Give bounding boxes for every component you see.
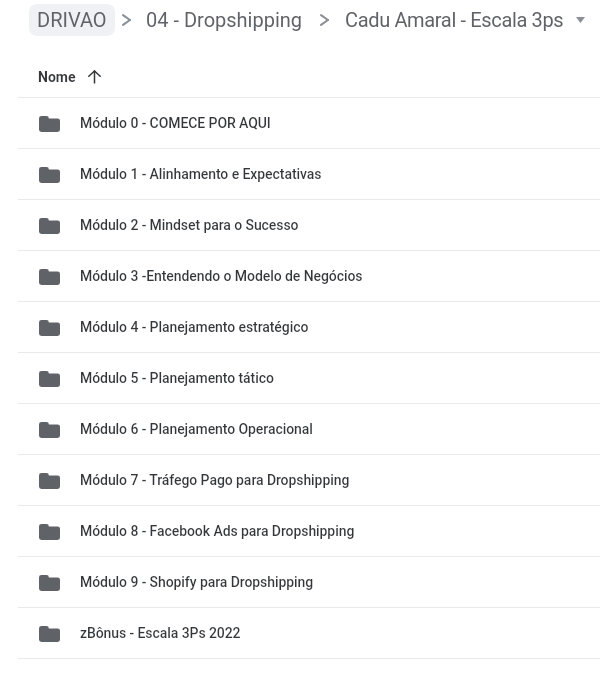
- button[interactable]: Módulo 1 - Alinhamento e Expectativas: [0, 149, 600, 199]
- staticText: Módulo 1 - Alinhamento e Expectativas: [80, 166, 322, 182]
- staticText: Módulo 3 -Entendendo o Modelo de Negócio…: [80, 268, 363, 284]
- button[interactable]: Módulo 5 - Planejamento tático: [0, 353, 600, 403]
- staticText: Módulo 0 - COMECE POR AQUI: [80, 115, 271, 131]
- button[interactable]: zBônus - Escala 3Ps 2022: [0, 608, 600, 658]
- button[interactable]: Módulo 6 - Planejamento Operacional: [0, 404, 600, 454]
- staticText: Módulo 5 - Planejamento tático: [80, 370, 274, 386]
- button[interactable]: Módulo 2 - Mindset para o Sucesso: [0, 200, 600, 250]
- staticText: Módulo 7 - Tráfego Pago para Dropshippin…: [80, 472, 350, 488]
- button[interactable]: Módulo 4 - Planejamento estratégico: [0, 302, 600, 352]
- button[interactable]: Nome: [38, 69, 101, 85]
- staticText: DRIVAO: [37, 8, 107, 31]
- button[interactable]: Módulo 7 - Tráfego Pago para Dropshippin…: [0, 455, 600, 505]
- staticText: Módulo 6 - Planejamento Operacional: [80, 421, 313, 437]
- button[interactable]: DRIVAO: [29, 4, 115, 36]
- staticText: Módulo 2 - Mindset para o Sucesso: [80, 217, 299, 233]
- button[interactable]: Módulo 9 - Shopify para Dropshipping: [0, 557, 600, 607]
- staticText: Módulo 9 - Shopify para Dropshipping: [80, 574, 314, 590]
- button[interactable]: Cadu Amaral - Escala 3ps: [345, 8, 564, 31]
- button[interactable]: Módulo 0 - COMECE POR AQUI: [0, 98, 600, 148]
- staticText: zBônus - Escala 3Ps 2022: [80, 625, 241, 641]
- button[interactable]: Módulo 3 -Entendendo o Modelo de Negócio…: [0, 251, 600, 301]
- button[interactable]: 04 - Dropshipping: [146, 8, 303, 31]
- staticText: Módulo 4 - Planejamento estratégico: [80, 319, 309, 335]
- button[interactable]: Módulo 8 - Facebook Ads para Dropshippin…: [0, 506, 600, 556]
- staticText: Nome: [38, 69, 76, 85]
- button[interactable]: Folder options: [572, 12, 588, 28]
- staticText: Módulo 8 - Facebook Ads para Dropshippin…: [80, 523, 355, 539]
